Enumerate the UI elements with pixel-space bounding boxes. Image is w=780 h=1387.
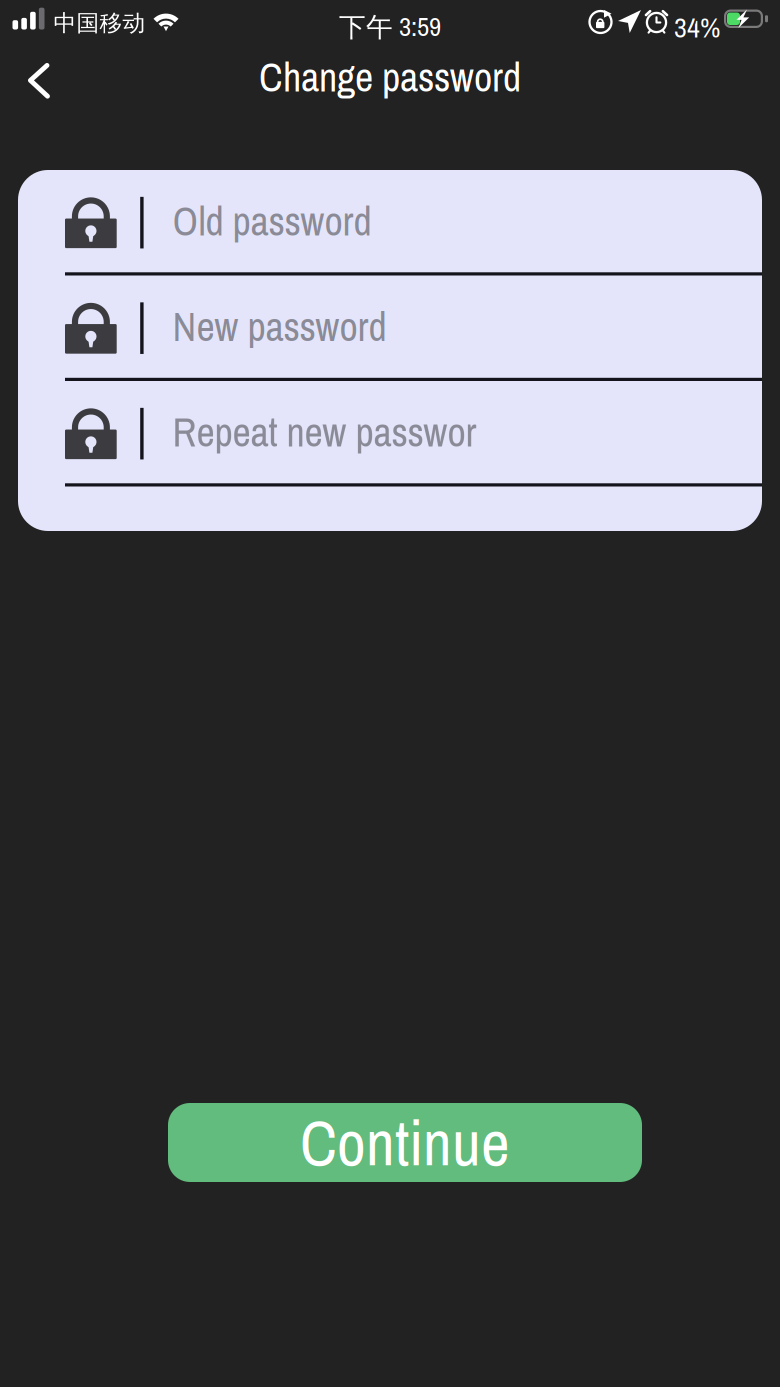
- staticText: 34%: [674, 8, 720, 46]
- button[interactable]: Back: [0, 46, 69, 108]
- staticText: New password: [173, 300, 387, 354]
- staticText: 下午 3:59: [339, 8, 441, 44]
- staticText: Repeat new password: [173, 405, 495, 459]
- staticText: 中国移动: [53, 9, 145, 38]
- staticText: Continue: [300, 1100, 510, 1185]
- button[interactable]: Continue: [168, 1103, 642, 1182]
- button[interactable]: Old password: [65, 170, 762, 275]
- button[interactable]: Repeat new password: [65, 381, 762, 486]
- staticText: Old password: [173, 194, 372, 248]
- staticText: Change password: [259, 50, 521, 104]
- button[interactable]: New password: [65, 275, 762, 381]
